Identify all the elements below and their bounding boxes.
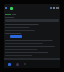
button[interactable]: Primary action <box>10 35 22 38</box>
button[interactable]: Home <box>6 61 12 67</box>
button[interactable]: Explore <box>14 61 20 67</box>
button[interactable]: Top app bar <box>4 4 60 12</box>
button[interactable]: Library <box>22 61 28 67</box>
